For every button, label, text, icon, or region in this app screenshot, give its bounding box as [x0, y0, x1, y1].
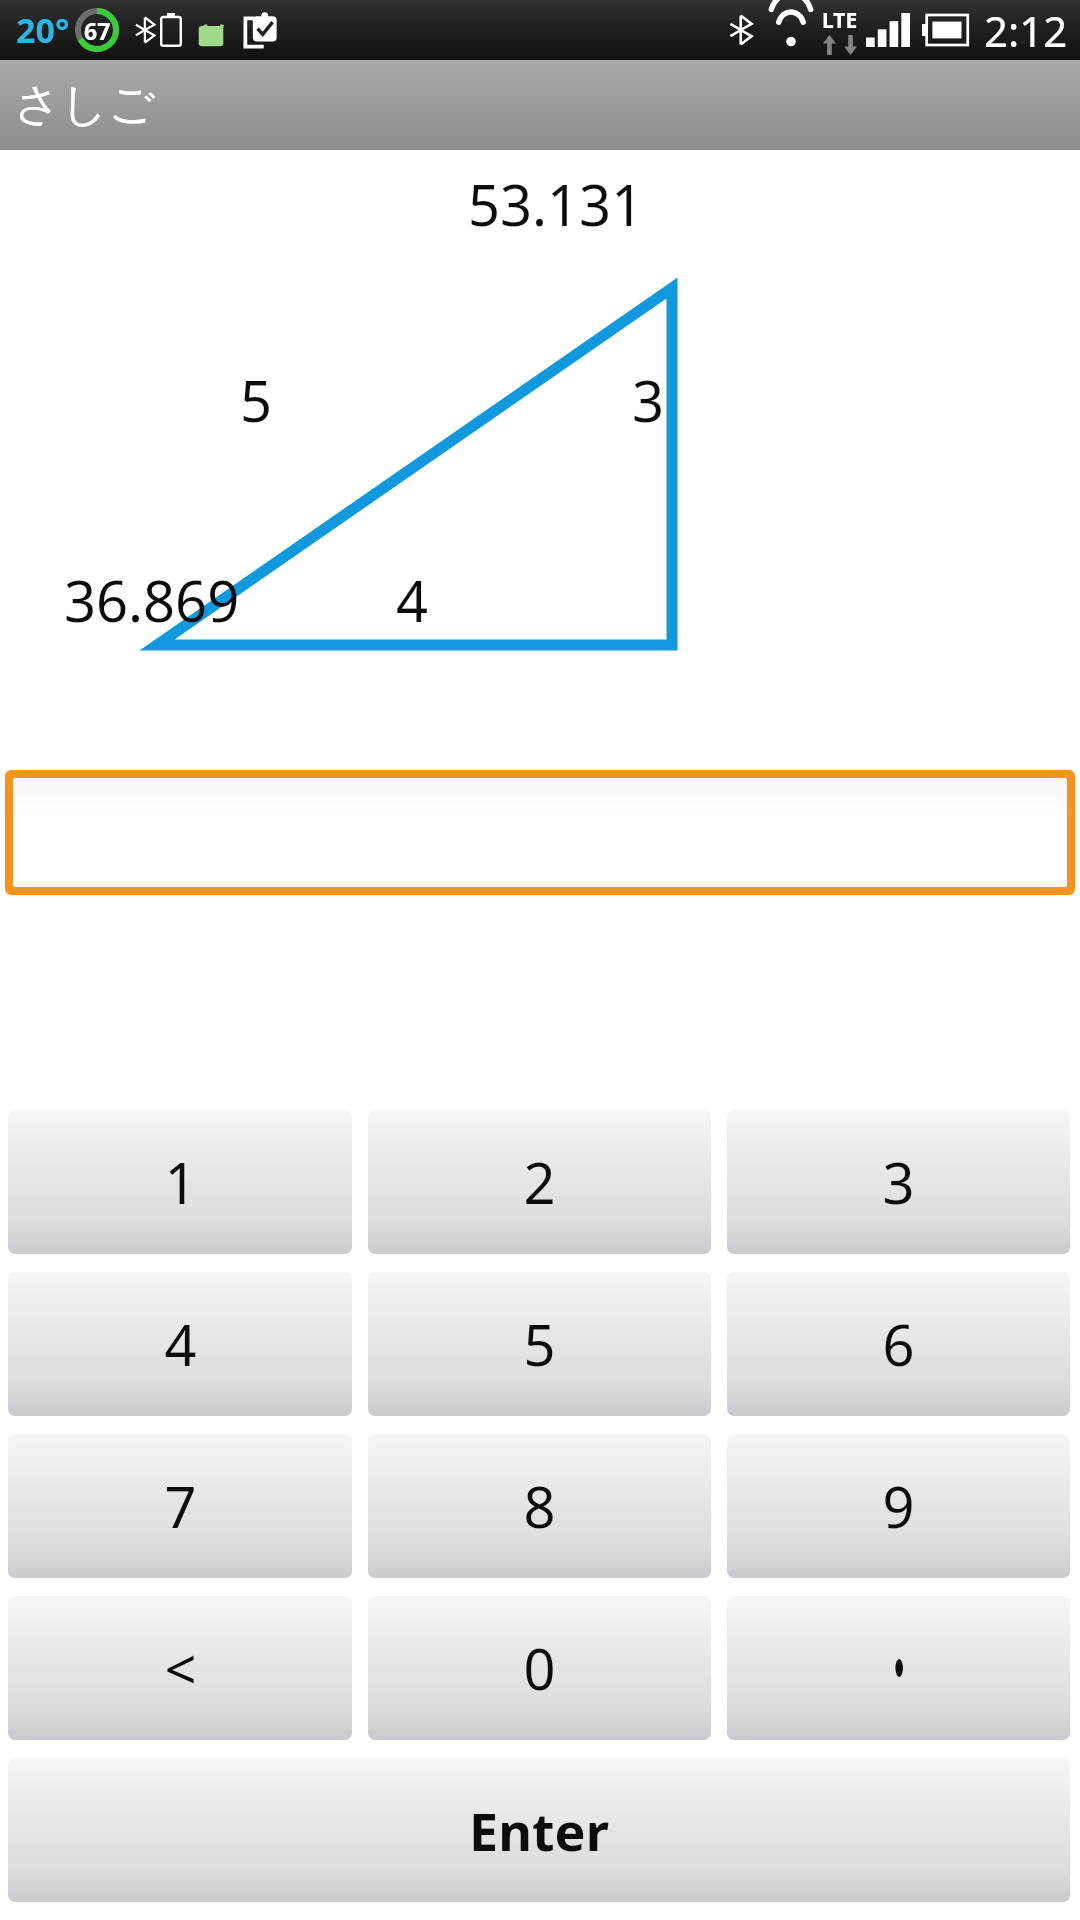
button[interactable]: 0 [368, 1596, 711, 1740]
staticText: 3 [632, 362, 665, 438]
staticText: さしご [14, 76, 156, 134]
staticText: LTE [822, 6, 858, 35]
staticText: 1 [164, 1144, 197, 1220]
button[interactable]: 5 [368, 1272, 711, 1416]
staticText: 7 [164, 1468, 197, 1544]
button[interactable]: Decimal point [727, 1596, 1070, 1740]
staticText: 0 [523, 1630, 556, 1706]
button[interactable]: 3 [727, 1110, 1070, 1254]
button[interactable]: 6 [727, 1272, 1070, 1416]
staticText: 2 [523, 1144, 556, 1220]
staticText: 67 [84, 15, 111, 46]
button[interactable]: 7 [8, 1434, 352, 1578]
staticText: 3 [882, 1144, 915, 1220]
staticText: < [164, 1630, 197, 1706]
staticText: 53.131 [468, 166, 644, 242]
staticText: 9 [882, 1468, 915, 1544]
staticText: Enter [469, 1795, 609, 1866]
staticText: 5 [523, 1306, 556, 1382]
button[interactable]: 1 [8, 1110, 352, 1254]
button[interactable]: 8 [368, 1434, 711, 1578]
staticText: 36.869 [64, 562, 240, 638]
staticText: 20° [16, 7, 70, 53]
button[interactable]: 2 [368, 1110, 711, 1254]
button[interactable]: Enter [8, 1758, 1070, 1902]
staticText: 4 [396, 562, 429, 638]
staticText: 5 [240, 362, 273, 438]
staticText: 8 [523, 1468, 556, 1544]
staticText: 2:12 [984, 2, 1068, 59]
button[interactable]: Backspace [8, 1596, 352, 1740]
staticText: 6 [882, 1306, 915, 1382]
button[interactable]: 9 [727, 1434, 1070, 1578]
staticText: 4 [164, 1306, 197, 1382]
button[interactable] [5, 770, 1075, 895]
button[interactable]: 4 [8, 1272, 352, 1416]
